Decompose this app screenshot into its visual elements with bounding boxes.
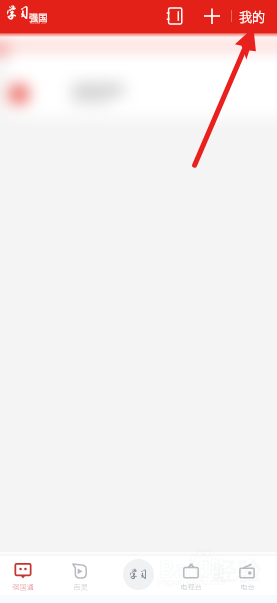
button[interactable]: 强国通 [0,557,49,595]
button[interactable]: 我的 [237,3,268,30]
button[interactable]: 电视台 [165,557,217,595]
staticText: xuexi.cn [30,20,47,25]
button[interactable]: 电台 [221,557,273,595]
button[interactable]: 百灵 [54,557,106,595]
button[interactable]: 学习 home [112,557,164,595]
staticText: 电台 [240,582,255,592]
button[interactable]: Study record [162,4,186,28]
staticText: 强国通 [12,582,34,592]
staticText: 经验 [213,552,261,587]
button[interactable]: Add [200,4,224,28]
staticText: 百灵 [73,582,88,592]
staticText: 我的 [239,7,266,26]
staticText: jingyan.baidu.com [157,576,227,587]
staticText: 电视台 [180,582,202,592]
staticText: 学习 [5,4,31,21]
staticText: Baidu [159,553,225,584]
staticText: 学习 [129,569,149,581]
staticText: 强国 [29,10,48,23]
